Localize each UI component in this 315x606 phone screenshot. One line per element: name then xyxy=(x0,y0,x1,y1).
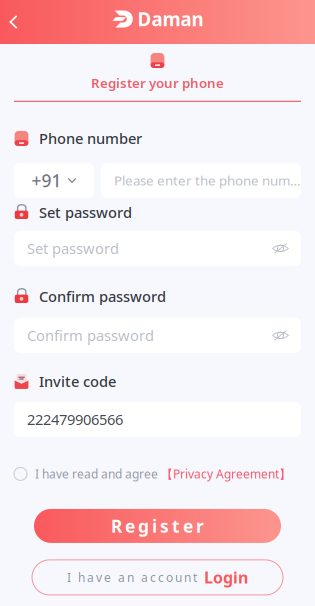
button[interactable]: R e g i s t e r xyxy=(34,509,281,543)
staticText: Invite code xyxy=(39,372,116,391)
staticText: +91 xyxy=(31,169,61,192)
staticText: Confirm password xyxy=(27,326,154,345)
staticText: Daman xyxy=(137,7,203,31)
staticText: I have read and agree xyxy=(35,466,158,482)
staticText: Set password xyxy=(27,239,119,258)
button[interactable]: I have read and agree xyxy=(14,464,301,484)
button[interactable]: Back xyxy=(0,0,28,44)
staticText: Login xyxy=(204,567,248,588)
staticText: Please enter the phone number xyxy=(114,172,301,189)
staticText: I h a v e a n a c c o u n t xyxy=(67,569,197,585)
staticText: Register your phone xyxy=(91,74,224,92)
staticText: Confirm password xyxy=(39,287,166,306)
button[interactable]: I h a v e a n a c c o u n t xyxy=(32,560,283,595)
staticText: R e g i s t e r xyxy=(111,514,204,537)
staticText: Set password xyxy=(39,203,132,222)
staticText: 【Privacy Agreement】 xyxy=(161,466,291,482)
button[interactable]: +91 xyxy=(14,163,94,198)
button[interactable]: Show password xyxy=(266,231,295,266)
button[interactable]: Show password xyxy=(266,318,295,353)
staticText: Phone number xyxy=(39,129,142,148)
staticText: 222479906566 xyxy=(27,410,123,429)
